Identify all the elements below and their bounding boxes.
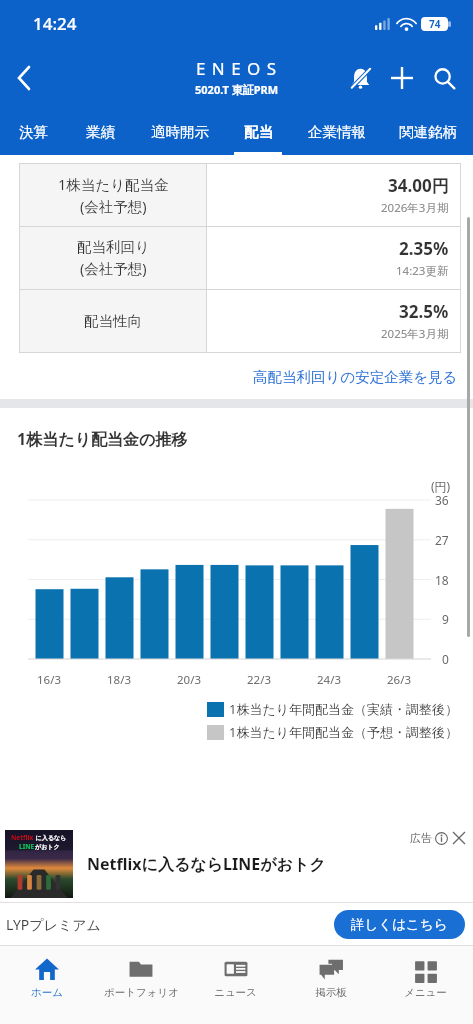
staticText: E N E O S bbox=[196, 57, 278, 80]
button[interactable]: Search bbox=[423, 57, 465, 99]
staticText: LINE bbox=[19, 842, 35, 851]
staticText: 27 bbox=[435, 532, 449, 548]
staticText: 2026年3月期 bbox=[381, 200, 449, 216]
button[interactable]: 企業情報 bbox=[291, 108, 382, 155]
staticText: がおトク bbox=[35, 843, 60, 851]
button[interactable]: メニュー bbox=[378, 946, 473, 1024]
staticText: 1株当たり年間配当金（予想・調整後） bbox=[229, 723, 459, 741]
button[interactable]: 関連銘柄 bbox=[382, 108, 473, 155]
staticText: 2025年3月期 bbox=[381, 326, 449, 342]
staticText: 1株当たり配当金の推移 bbox=[17, 428, 188, 450]
staticText: 22/3 bbox=[247, 672, 272, 688]
staticText: 適時開示 bbox=[151, 123, 209, 141]
staticText: 14:23更新 bbox=[396, 263, 449, 279]
staticText: 企業情報 bbox=[308, 123, 366, 141]
button[interactable]: Back bbox=[0, 54, 48, 102]
staticText: Netflix bbox=[11, 833, 34, 842]
staticText: メニュー bbox=[404, 986, 447, 999]
staticText: 1株当たり配当金 bbox=[58, 174, 169, 194]
button[interactable]: Close ad bbox=[452, 831, 466, 845]
staticText: 32.5% bbox=[399, 300, 449, 323]
staticText: 2.35% bbox=[399, 237, 449, 260]
staticText: Netflixに入るならLINEがおトク bbox=[87, 853, 326, 875]
button[interactable]: 高配当利回りの安定企業を見る bbox=[251, 365, 460, 389]
staticText: 16/3 bbox=[37, 672, 62, 688]
button[interactable]: ニュース bbox=[188, 946, 283, 1024]
staticText: 配当 bbox=[244, 123, 273, 141]
staticText: 決算 bbox=[19, 123, 48, 141]
staticText: に入るなら bbox=[34, 834, 67, 842]
staticText: 業績 bbox=[86, 123, 115, 141]
staticText: 34.00円 bbox=[388, 174, 449, 197]
staticText: 広告 bbox=[410, 831, 432, 845]
staticText: ポートフォリオ bbox=[104, 986, 179, 999]
button[interactable]: Add bbox=[381, 57, 423, 99]
staticText: 18 bbox=[435, 572, 449, 588]
staticText: ホーム bbox=[31, 986, 63, 999]
staticText: 配当利回り bbox=[77, 238, 150, 256]
button[interactable]: 詳しくはこちら bbox=[334, 910, 465, 939]
staticText: 0 bbox=[442, 651, 449, 667]
staticText: 26/3 bbox=[387, 672, 412, 688]
button[interactable]: 適時開示 bbox=[134, 108, 225, 155]
staticText: 1株当たり年間配当金（実績・調整後） bbox=[229, 700, 459, 718]
button[interactable]: 業績 bbox=[67, 108, 134, 155]
staticText: 高配当利回りの安定企業を見る bbox=[253, 368, 458, 386]
button[interactable]: 配当 bbox=[225, 108, 291, 155]
staticText: 9 bbox=[442, 611, 449, 627]
staticText: 配当性向 bbox=[84, 312, 142, 330]
staticText: (会社予想) bbox=[80, 196, 147, 216]
button[interactable]: Netflix bbox=[0, 826, 473, 902]
staticText: (円) bbox=[431, 478, 451, 494]
staticText: (会社予想) bbox=[80, 258, 147, 278]
staticText: 20/3 bbox=[177, 672, 202, 688]
staticText: 詳しくはこちら bbox=[351, 916, 448, 933]
staticText: 掲示板 bbox=[315, 986, 347, 999]
button[interactable]: 決算 bbox=[0, 108, 67, 155]
staticText: LYPプレミアム bbox=[6, 915, 101, 934]
staticText: 24/3 bbox=[317, 672, 342, 688]
staticText: 5020.T 東証PRM bbox=[195, 82, 279, 97]
staticText: 36 bbox=[435, 492, 449, 508]
button[interactable]: ポートフォリオ bbox=[94, 946, 188, 1024]
staticText: 18/3 bbox=[107, 672, 132, 688]
staticText: 74 bbox=[429, 17, 441, 31]
staticText: ニュース bbox=[214, 986, 257, 999]
button[interactable]: ホーム bbox=[0, 946, 94, 1024]
button[interactable]: Notifications off bbox=[339, 57, 381, 99]
staticText: 関連銘柄 bbox=[399, 123, 457, 141]
button[interactable]: 掲示板 bbox=[283, 946, 378, 1024]
staticText: 14:24 bbox=[33, 12, 77, 35]
